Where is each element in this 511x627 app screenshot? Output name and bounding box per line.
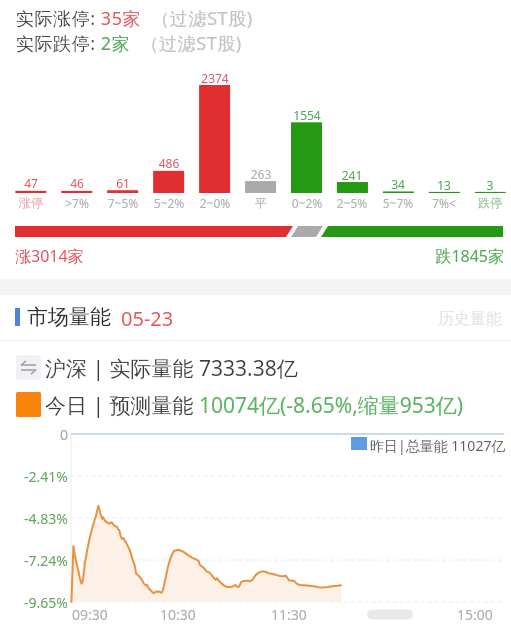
staticText: 09:30 xyxy=(72,605,108,624)
staticText: 历史量能 xyxy=(438,309,502,329)
staticText: -2.41% xyxy=(0,467,68,486)
staticText: 263 xyxy=(236,166,286,182)
staticText: 05-23 xyxy=(121,305,174,332)
staticText: 7~5% xyxy=(98,195,148,211)
staticText: 2~5% xyxy=(327,195,377,211)
staticText: 15:00 xyxy=(457,605,493,624)
staticText: 3 xyxy=(465,177,511,193)
button[interactable]: 今日 | 预测量能 10074亿(-8.65%,缩量953亿) xyxy=(10,387,480,421)
staticText: 7%< xyxy=(419,195,469,211)
staticText: 10:30 xyxy=(160,605,196,624)
staticText: 0~2% xyxy=(282,195,332,211)
staticText: -7.24% xyxy=(0,551,68,570)
staticText: 实际跌停: 2家 （过滤ST股) xyxy=(16,31,242,56)
staticText: 34 xyxy=(373,176,423,192)
staticText: 11:30 xyxy=(271,605,307,624)
staticText: 5~7% xyxy=(373,195,423,211)
staticText: 0 xyxy=(0,425,68,444)
staticText: 实际涨停: 35家 （过滤ST股) xyxy=(16,6,253,31)
staticText: 47 xyxy=(6,175,56,191)
staticText: 昨日|总量能 11027亿 xyxy=(370,436,506,455)
staticText: 今日 | 预测量能 10074亿(-8.65%,缩量953亿) xyxy=(45,391,464,420)
button[interactable]: 历史量能 xyxy=(430,303,510,333)
staticText: 涨停 xyxy=(6,195,56,210)
staticText: 跌1845家 xyxy=(403,245,504,267)
staticText: >7% xyxy=(52,195,102,211)
staticText: 市场量能 xyxy=(27,304,111,330)
staticText: 5~2% xyxy=(144,195,194,211)
staticText: 平 xyxy=(236,195,286,210)
button[interactable]: 沪深 | 实际量能 7333.38亿 xyxy=(10,350,310,384)
staticText: 沪深 | 实际量能 7333.38亿 xyxy=(45,354,298,383)
staticText: -9.65% xyxy=(0,593,68,612)
staticText: 486 xyxy=(144,155,194,171)
staticText: 2374 xyxy=(190,70,240,86)
staticText: 2~0% xyxy=(190,195,240,211)
staticText: -4.83% xyxy=(0,509,68,528)
staticText: 241 xyxy=(327,167,377,183)
staticText: 跌停 xyxy=(465,195,511,210)
staticText: 1554 xyxy=(282,107,332,123)
staticText: 涨3014家 xyxy=(15,245,84,267)
button[interactable]: 市场量能 xyxy=(0,295,511,341)
staticText: 61 xyxy=(98,175,148,191)
staticText: 46 xyxy=(52,175,102,191)
staticText: 13 xyxy=(419,177,469,193)
